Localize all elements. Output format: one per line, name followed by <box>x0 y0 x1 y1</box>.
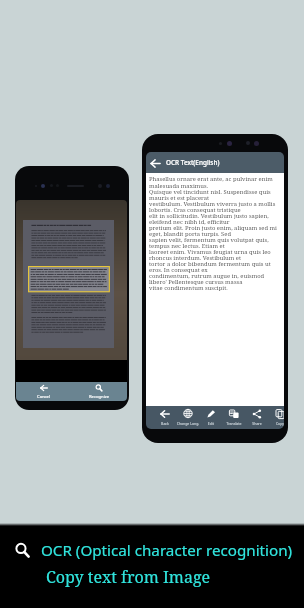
staticText: Cancel <box>37 394 51 400</box>
staticText: Recognize <box>89 394 110 400</box>
button[interactable]: Share <box>245 406 268 429</box>
button[interactable]: Copy <box>268 406 284 429</box>
staticText: Translate <box>214 421 254 426</box>
staticText: OCR (Optical character recognition) <box>41 540 293 561</box>
button[interactable]: Cancel <box>16 382 71 401</box>
staticText: Phasellus ornare erat ante, ac pulvinar … <box>149 175 283 292</box>
button[interactable]: Recognize <box>71 382 127 401</box>
button[interactable]: Back <box>146 154 164 172</box>
staticText: Copy <box>260 421 284 426</box>
staticText: Change Lang. <box>168 421 208 426</box>
staticText: Back <box>146 421 185 426</box>
button[interactable]: Translate <box>222 406 245 429</box>
staticText: Share <box>237 421 277 426</box>
button[interactable]: Back <box>153 406 176 429</box>
button[interactable]: Edit <box>199 406 222 429</box>
button[interactable]: Back <box>146 152 284 173</box>
button[interactable]: Change Lang. <box>176 406 199 429</box>
staticText: Edit <box>191 421 231 426</box>
staticText: OCR Text(English) <box>166 158 220 167</box>
staticText: Copy text from Image <box>46 566 211 588</box>
